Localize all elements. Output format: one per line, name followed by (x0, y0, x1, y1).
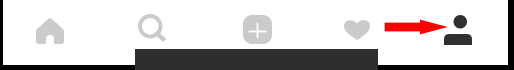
button[interactable]: New post (235, 7, 280, 52)
button[interactable]: Home (28, 10, 72, 52)
button[interactable]: Profile (436, 7, 480, 53)
button[interactable]: Search (132, 10, 176, 49)
button[interactable]: Activity (336, 11, 378, 48)
